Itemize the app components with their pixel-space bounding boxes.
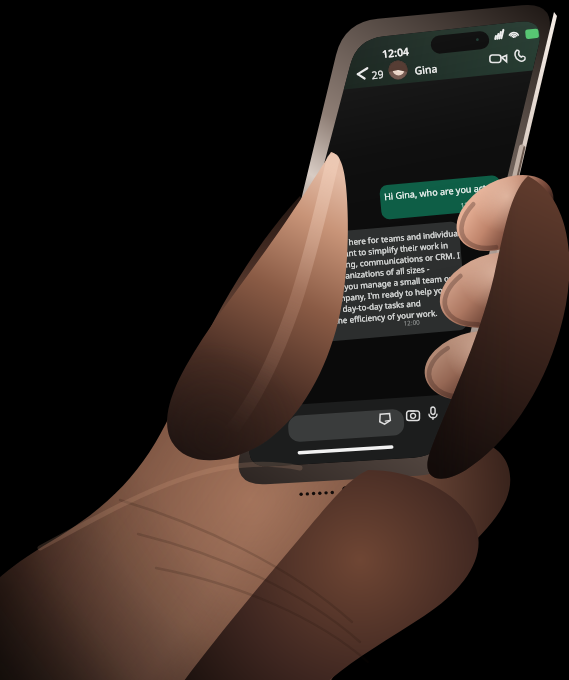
button[interactable]: Hand holding phone showing Gina chat — [0, 0, 569, 680]
